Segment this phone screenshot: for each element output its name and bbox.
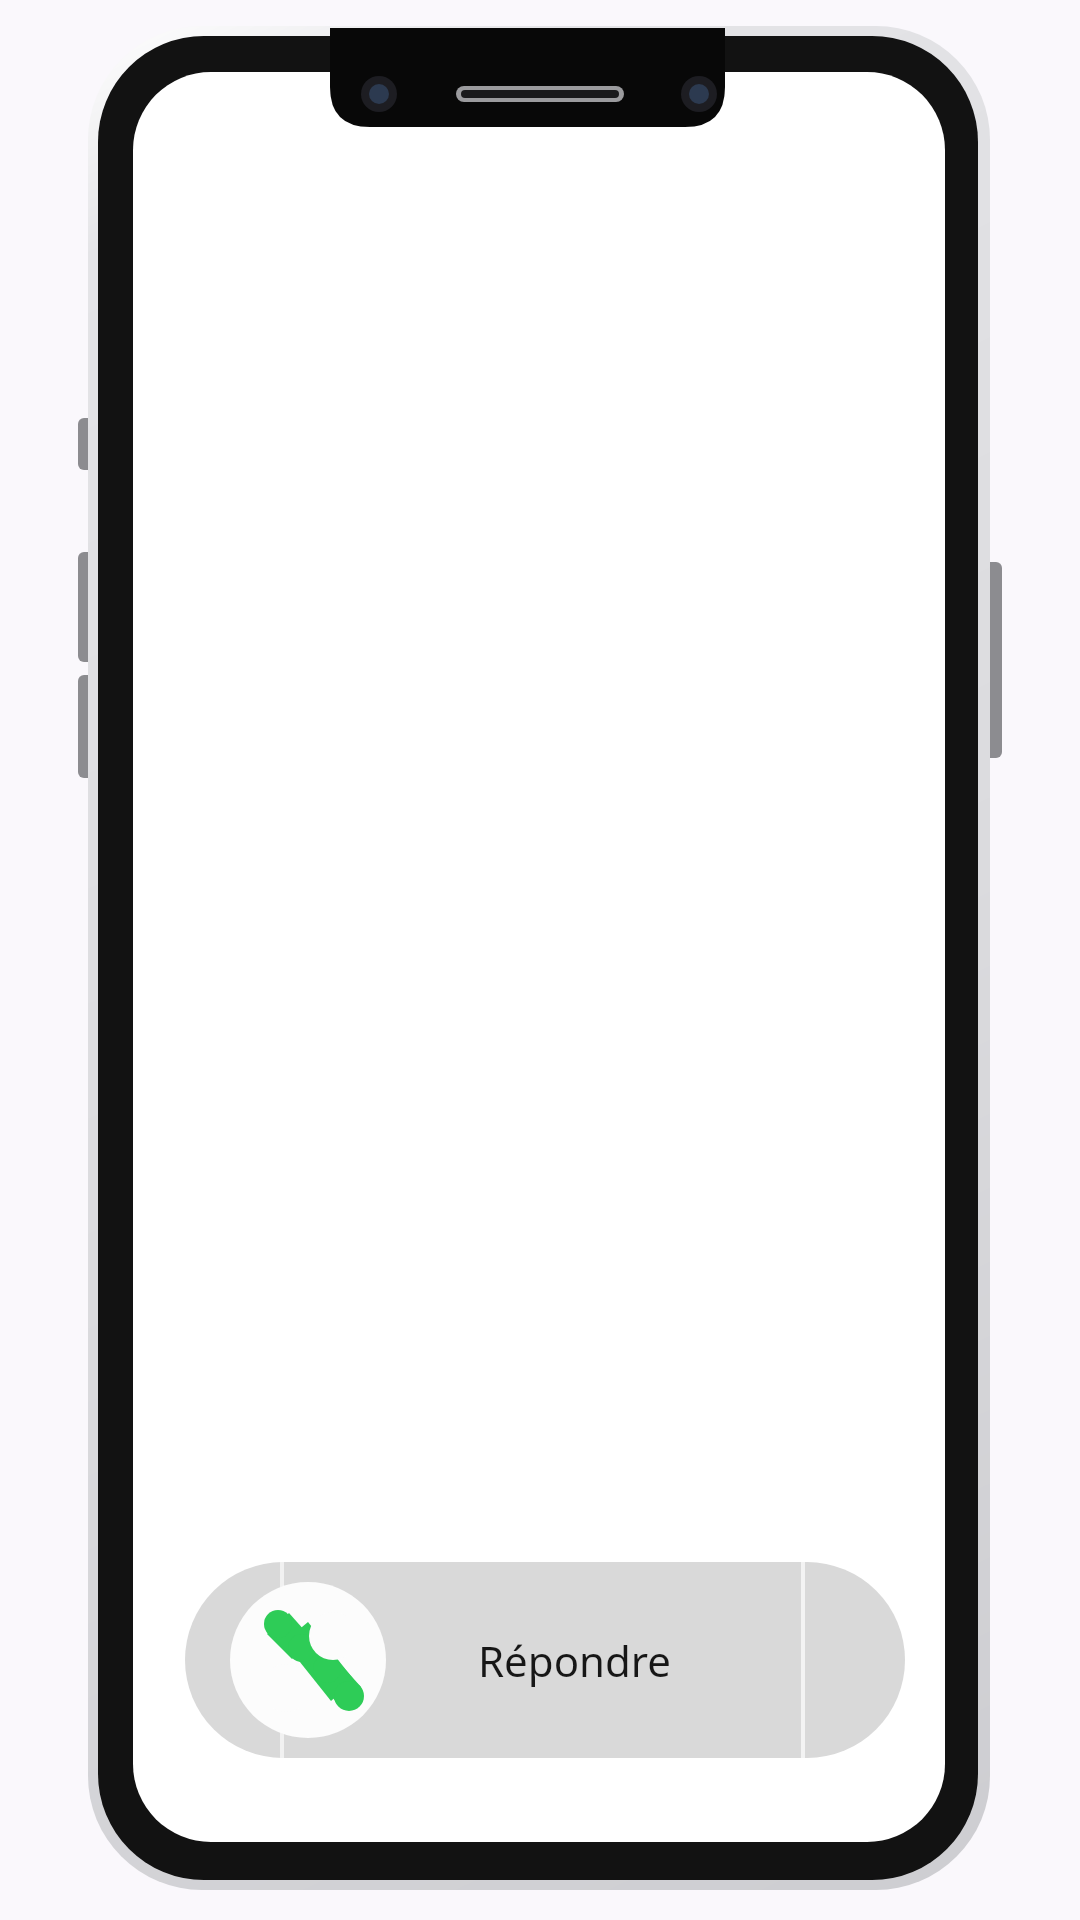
button[interactable]: Répondre <box>185 1562 905 1758</box>
button[interactable]: Answer call <box>230 1582 386 1738</box>
